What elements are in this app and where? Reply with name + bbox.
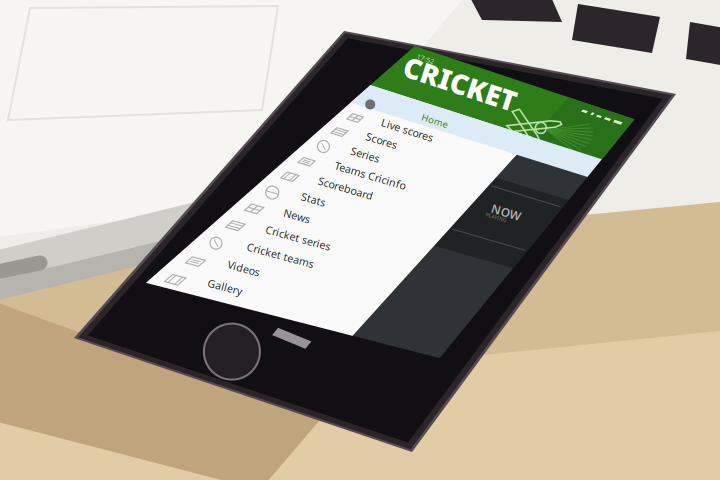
staticText: PLAYING xyxy=(485,218,507,225)
staticText: Videos xyxy=(226,271,259,285)
staticText: CRICKET xyxy=(401,70,519,107)
staticText: Scoreboard xyxy=(316,189,373,203)
staticText: Gallery xyxy=(206,289,241,303)
staticText: News xyxy=(282,220,309,234)
staticText: Cricket series xyxy=(264,236,331,251)
staticText: Cricket teams xyxy=(245,254,314,268)
staticText: Series xyxy=(348,159,378,173)
staticText: NOW xyxy=(490,207,520,223)
staticText: 17:52 xyxy=(416,58,434,67)
staticText: Home xyxy=(420,119,447,132)
staticText: Scores xyxy=(364,145,396,159)
staticText: Stats xyxy=(299,204,324,218)
staticText: Live scores xyxy=(379,131,433,145)
staticText: Teams Cricinfo xyxy=(333,174,407,188)
